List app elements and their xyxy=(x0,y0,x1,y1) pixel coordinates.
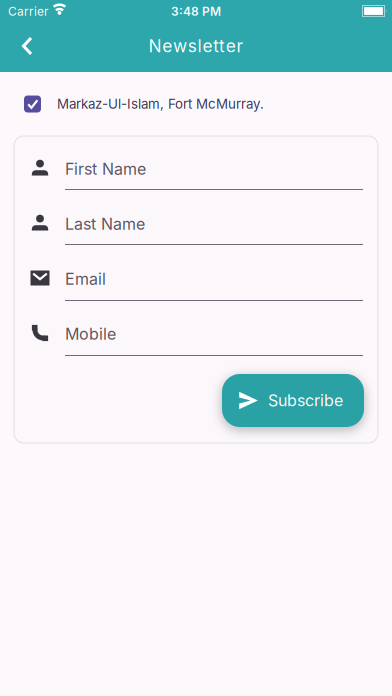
staticText: Subscribe xyxy=(268,391,343,410)
staticText: Carrier xyxy=(8,4,49,19)
staticText: Email xyxy=(65,270,106,288)
staticText: Mobile xyxy=(65,325,116,343)
button[interactable]: First Name xyxy=(14,141,378,196)
staticText: 3:48 PM xyxy=(171,4,221,19)
staticText: First Name xyxy=(65,160,146,178)
button[interactable]: Mobile xyxy=(14,306,378,361)
staticText: Last Name xyxy=(65,215,145,233)
button[interactable]: Markaz-Ul-Islam, Fort McMurray. xyxy=(0,87,392,121)
button[interactable] xyxy=(5,24,49,68)
button[interactable]: Last Name xyxy=(14,196,378,251)
staticText: Markaz-Ul-Islam, Fort McMurray. xyxy=(57,96,264,112)
button[interactable]: Email xyxy=(14,251,378,306)
button[interactable]: Subscribe xyxy=(222,374,364,427)
staticText: Newsletter xyxy=(148,36,244,56)
